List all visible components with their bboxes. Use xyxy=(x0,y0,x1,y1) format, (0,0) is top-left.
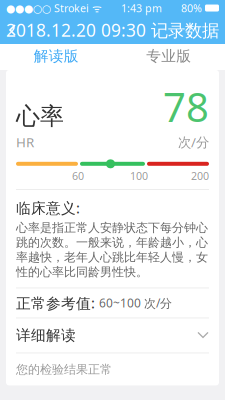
staticText: 解读版 xyxy=(34,47,79,65)
staticText: 80% xyxy=(181,1,202,15)
staticText: 专业版 xyxy=(146,47,191,65)
staticText: 200 xyxy=(191,169,209,183)
staticText: 次/分 xyxy=(178,133,209,151)
staticText: 60 xyxy=(72,169,84,183)
button[interactable]: 解读版 xyxy=(0,44,112,70)
staticText: 您的检验结果正常 xyxy=(16,362,112,377)
button[interactable]: Back xyxy=(0,17,26,43)
staticText: 详细解读 xyxy=(16,326,76,344)
staticText: 临床意义: xyxy=(16,198,80,217)
button[interactable]: 专业版 xyxy=(112,44,225,70)
staticText: 60~100 次/分 xyxy=(99,295,172,311)
staticText: 心率 xyxy=(16,102,64,131)
button[interactable]: 详细解读 xyxy=(6,318,219,352)
staticText: 1:43 pm xyxy=(121,1,162,15)
staticText: 正常参考值: xyxy=(16,293,99,313)
staticText: ●●●○○ Strokei ᯤ xyxy=(6,1,102,15)
staticText: HR xyxy=(16,133,34,151)
staticText: 心率是指正常人安静状态下每分钟心跳的次数。一般来说，年龄越小，心率越快，老年人心… xyxy=(16,220,208,279)
staticText: 100 xyxy=(130,169,148,183)
staticText: 78 xyxy=(163,80,209,133)
staticText: 2018.12.20 09:30 记录数据 xyxy=(6,18,219,41)
